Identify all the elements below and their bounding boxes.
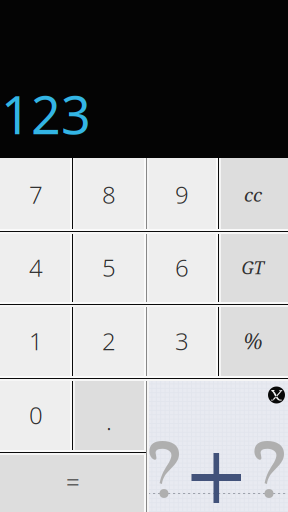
staticText: 123 — [1, 79, 91, 149]
staticText: 0 — [29, 399, 43, 431]
button[interactable]: . — [72, 378, 146, 452]
button[interactable]: 7 — [0, 158, 72, 231]
staticText: 2 — [102, 325, 116, 357]
staticText: . — [106, 405, 112, 437]
button[interactable]: 2 — [72, 304, 146, 378]
staticText: 9 — [175, 179, 189, 210]
staticText: cc — [244, 182, 262, 207]
button[interactable]: 0 — [0, 378, 72, 452]
staticText: 4 — [29, 252, 43, 283]
button[interactable]: 5 — [72, 231, 146, 304]
button[interactable]: Clear — [268, 386, 285, 403]
button[interactable]: 9 — [146, 158, 218, 231]
staticText: 7 — [29, 179, 43, 210]
button[interactable]: Handwriting input — [146, 378, 288, 512]
button[interactable]: cc — [218, 158, 288, 231]
staticText: 1 — [29, 325, 43, 357]
staticText: 3 — [175, 325, 189, 357]
staticText: 8 — [102, 179, 116, 210]
button[interactable]: 6 — [146, 231, 218, 304]
staticText: GT — [241, 256, 264, 279]
button[interactable]: = — [0, 452, 146, 512]
button[interactable]: % — [218, 304, 288, 378]
button[interactable]: GT — [218, 231, 288, 304]
button[interactable]: 1 — [0, 304, 72, 378]
staticText: % — [243, 326, 262, 356]
button[interactable]: 3 — [146, 304, 218, 378]
button[interactable]: 8 — [72, 158, 146, 231]
staticText: 6 — [175, 252, 189, 283]
staticText: 5 — [102, 252, 116, 283]
button[interactable]: 4 — [0, 231, 72, 304]
staticText: = — [66, 466, 80, 498]
